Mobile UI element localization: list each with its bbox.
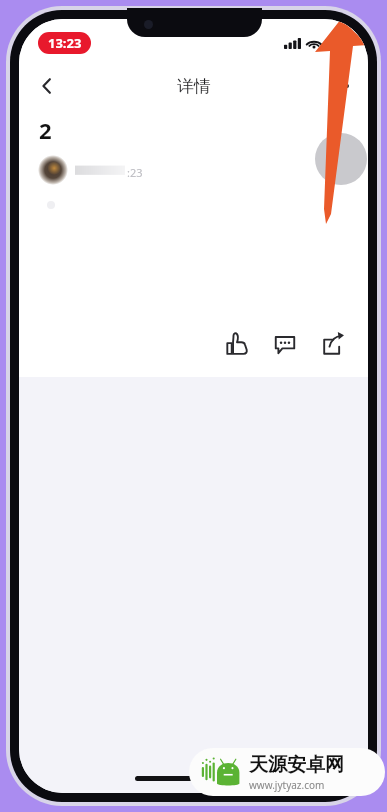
staticText: www.jytyaz.com [249,778,325,792]
staticText: 详情 [177,76,211,97]
staticText: 天源安卓网 [249,753,344,777]
button[interactable]: Comment [264,323,306,365]
staticText: 2 [39,115,52,145]
staticText: :23 [127,165,143,180]
staticText: 13:23 [48,34,82,52]
button[interactable]: Like [216,323,258,365]
button[interactable]: More options [320,66,360,106]
button[interactable]: Back [27,66,67,106]
button[interactable]: Share [312,323,354,365]
